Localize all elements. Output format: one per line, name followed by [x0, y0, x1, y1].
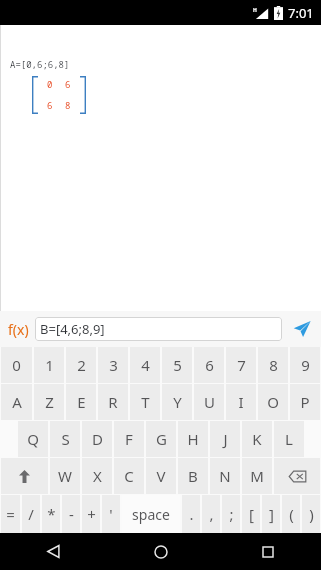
button[interactable]: 3	[98, 347, 128, 383]
button[interactable]: Recents	[214, 533, 321, 570]
button[interactable]: 7	[226, 347, 256, 383]
button[interactable]: I	[226, 384, 256, 420]
staticText: .	[189, 504, 194, 524]
staticText: X	[93, 466, 102, 486]
button[interactable]: -	[62, 495, 80, 533]
staticText: )	[309, 504, 314, 524]
button[interactable]: Z	[34, 384, 64, 420]
button[interactable]: Home	[107, 533, 214, 570]
staticText: R	[108, 392, 118, 412]
staticText: [	[249, 504, 254, 524]
button[interactable]: Send	[289, 316, 315, 342]
button[interactable]: P	[290, 384, 320, 420]
staticText: ]	[269, 504, 274, 524]
button[interactable]: T	[130, 384, 160, 420]
staticText: S	[61, 429, 70, 449]
staticText: Z	[45, 392, 54, 412]
button[interactable]: ]	[262, 495, 280, 533]
staticText: 9	[301, 355, 310, 375]
button[interactable]: R	[98, 384, 128, 420]
button[interactable]: .	[182, 495, 200, 533]
button[interactable]: ;	[222, 495, 240, 533]
button[interactable]: G	[146, 421, 176, 457]
staticText: 6	[47, 99, 53, 111]
staticText: B=[4,6;8,9]	[40, 320, 105, 338]
button[interactable]: Y	[162, 384, 192, 420]
button[interactable]: M	[242, 458, 272, 494]
button[interactable]: H	[178, 421, 208, 457]
button[interactable]: X	[82, 458, 112, 494]
staticText: =	[6, 504, 15, 524]
button[interactable]: 0	[1, 347, 32, 383]
button[interactable]: 6	[194, 347, 224, 383]
button[interactable]: [	[242, 495, 260, 533]
button[interactable]: W	[50, 458, 80, 494]
staticText: f(x)	[8, 320, 29, 339]
staticText: space	[132, 505, 170, 524]
staticText: '	[109, 504, 113, 524]
button[interactable]: F	[114, 421, 144, 457]
button[interactable]: L	[274, 421, 304, 457]
button[interactable]: B	[178, 458, 208, 494]
button[interactable]: V	[146, 458, 176, 494]
button[interactable]: 1	[34, 347, 64, 383]
staticText: E	[77, 392, 86, 412]
button[interactable]: *	[42, 495, 60, 533]
button[interactable]: C	[114, 458, 144, 494]
staticText: P	[300, 392, 310, 412]
staticText: 1	[45, 355, 54, 375]
staticText: 7	[237, 355, 246, 375]
staticText: 0	[12, 355, 21, 375]
button[interactable]: 8	[258, 347, 288, 383]
staticText: T	[141, 392, 150, 412]
button[interactable]: Shift	[1, 458, 48, 494]
button[interactable]: B=[4,6;8,9]	[35, 317, 282, 341]
staticText: /	[28, 504, 34, 524]
button[interactable]: =	[1, 495, 20, 533]
button[interactable]: Q	[18, 421, 48, 457]
button[interactable]: )	[302, 495, 320, 533]
button[interactable]: '	[102, 495, 120, 533]
button[interactable]: space	[122, 495, 180, 533]
button[interactable]: J	[210, 421, 240, 457]
button[interactable]: +	[82, 495, 100, 533]
staticText: D	[92, 429, 103, 449]
staticText: 4	[141, 355, 150, 375]
staticText: W	[58, 466, 72, 486]
button[interactable]: N	[210, 458, 240, 494]
button[interactable]: 4	[130, 347, 160, 383]
button[interactable]: E	[66, 384, 96, 420]
button[interactable]: O	[258, 384, 288, 420]
button[interactable]: 9	[290, 347, 320, 383]
button[interactable]: A	[1, 384, 32, 420]
staticText: F	[125, 429, 133, 449]
staticText: *	[47, 504, 56, 524]
button[interactable]: Backspace	[274, 458, 320, 494]
staticText: M	[250, 466, 264, 486]
staticText: U	[204, 392, 215, 412]
button[interactable]: 5	[162, 347, 192, 383]
button[interactable]: U	[194, 384, 224, 420]
staticText: L	[285, 429, 293, 449]
button[interactable]: f(x)	[6, 316, 31, 343]
staticText: -	[69, 504, 74, 524]
staticText: +	[87, 504, 96, 524]
button[interactable]: K	[242, 421, 272, 457]
staticText: Y	[173, 392, 182, 412]
button[interactable]: /	[22, 495, 40, 533]
staticText: 0	[47, 78, 53, 90]
button[interactable]: 2	[66, 347, 96, 383]
button[interactable]: Back	[0, 533, 107, 570]
button[interactable]: D	[82, 421, 112, 457]
button[interactable]: ,	[202, 495, 220, 533]
staticText: A	[12, 392, 22, 412]
staticText: H	[253, 7, 257, 14]
staticText: 5	[173, 355, 182, 375]
button[interactable]: (	[282, 495, 300, 533]
staticText: C	[124, 466, 134, 486]
button[interactable]: S	[50, 421, 80, 457]
staticText: 8	[269, 355, 278, 375]
staticText: 2	[77, 355, 86, 375]
